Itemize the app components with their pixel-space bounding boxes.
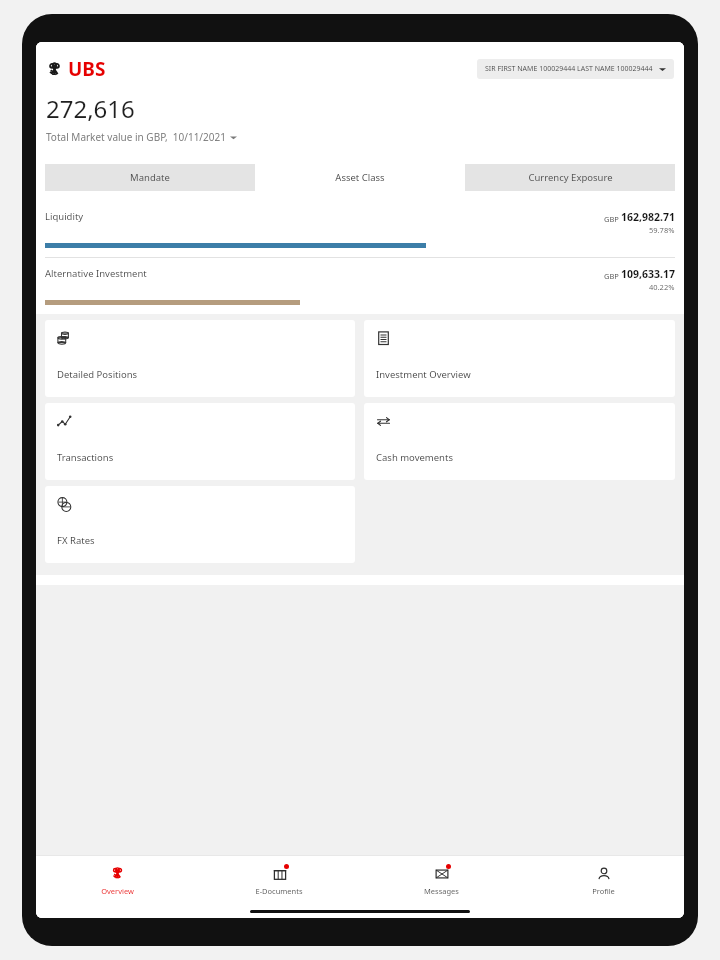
staticText: 40.22% <box>649 282 675 292</box>
staticText: Alternative Investment <box>45 267 604 280</box>
button[interactable]: Currency Exposure <box>465 164 675 191</box>
staticText: Total Market value in GBP, 10/11/2021 <box>46 130 226 144</box>
button[interactable]: Overview <box>36 856 198 904</box>
button[interactable]: E-Documents <box>198 856 360 904</box>
staticText: FX Rates <box>57 534 95 547</box>
staticText: Messages <box>424 886 459 896</box>
button[interactable]: Profile <box>522 856 684 904</box>
staticText: E-Documents <box>255 886 303 896</box>
staticText: Cash movements <box>376 451 453 464</box>
staticText: 109,633.17 <box>621 267 675 281</box>
staticText: Currency Exposure <box>528 171 613 184</box>
button[interactable]: Asset Class <box>255 164 465 191</box>
button[interactable]: Transactions <box>45 403 355 480</box>
button[interactable]: Cash movements <box>364 403 675 480</box>
staticText: Asset Class <box>335 171 385 184</box>
staticText: GBP <box>604 214 621 224</box>
staticText: GBP <box>604 271 621 281</box>
staticText: Transactions <box>57 451 114 464</box>
staticText: Profile <box>592 886 615 896</box>
button[interactable]: Investment Overview <box>364 320 675 397</box>
staticText: UBS <box>68 56 106 82</box>
staticText: 162,982.71 <box>621 210 675 224</box>
button[interactable]: Detailed Positions <box>45 320 355 397</box>
staticText: Liquidity <box>45 210 604 223</box>
staticText: Investment Overview <box>376 368 471 381</box>
staticText: Overview <box>101 886 134 896</box>
staticText: 272,616 <box>46 92 135 125</box>
staticText: SIR FIRST NAME 100029444 LAST NAME 10002… <box>485 64 653 74</box>
button[interactable]: FX Rates <box>45 486 355 563</box>
staticText: Mandate <box>130 171 170 184</box>
button[interactable]: Messages <box>360 856 522 904</box>
staticText: 59.78% <box>649 225 675 235</box>
button[interactable]: Total Market value in GBP, 10/11/2021 <box>46 130 237 144</box>
button[interactable]: Mandate <box>45 164 255 191</box>
staticText: Detailed Positions <box>57 368 138 381</box>
button[interactable]: SIR FIRST NAME 100029444 LAST NAME 10002… <box>477 59 674 79</box>
